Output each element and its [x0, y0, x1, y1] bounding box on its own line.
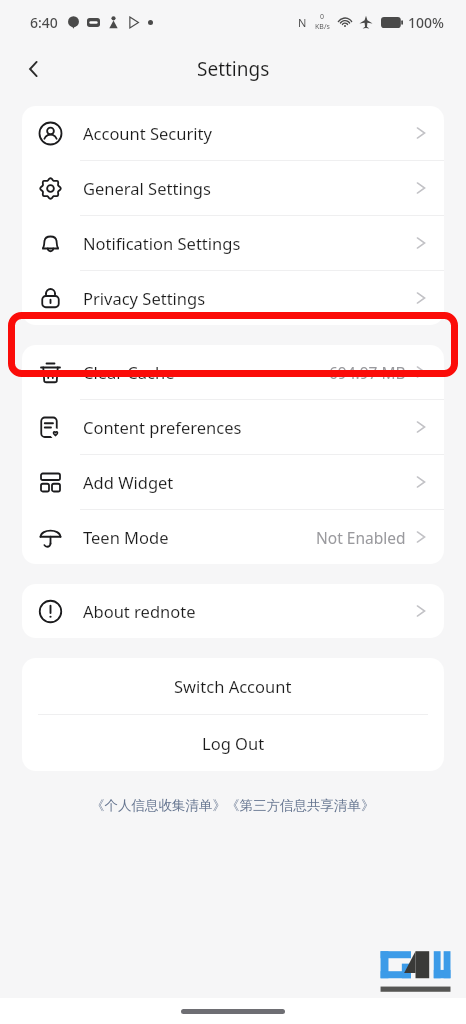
button[interactable]: Add Widget: [22, 455, 444, 509]
staticText: General Settings: [83, 177, 211, 199]
button[interactable]: Back: [14, 49, 54, 89]
staticText: Content preferences: [83, 416, 242, 438]
button[interactable]: 《个人信息收集清单》: [91, 797, 226, 814]
staticText: N: [298, 15, 307, 30]
staticText: Add Widget: [83, 471, 174, 493]
button[interactable]: Account Security: [22, 106, 444, 160]
staticText: 《第三方信息共享清单》: [226, 797, 375, 814]
button[interactable]: Switch Account: [22, 658, 444, 714]
staticText: KB/s: [315, 22, 330, 32]
staticText: 6:40: [30, 13, 58, 32]
staticText: Not Enabled: [316, 527, 406, 548]
staticText: 0: [320, 12, 325, 22]
button[interactable]: Notification Settings: [22, 216, 444, 270]
staticText: Clear Cache: [83, 361, 175, 383]
button[interactable]: About rednote: [22, 584, 444, 638]
button[interactable]: Teen Mode: [22, 510, 444, 564]
button[interactable]: General Settings: [22, 161, 444, 215]
staticText: Switch Account: [174, 675, 292, 697]
button[interactable]: Privacy Settings: [22, 271, 444, 325]
staticText: Settings: [197, 56, 270, 82]
staticText: Account Security: [83, 122, 212, 144]
button[interactable]: Content preferences: [22, 400, 444, 454]
staticText: Notification Settings: [83, 232, 241, 254]
staticText: 100%: [408, 13, 444, 32]
staticText: Log Out: [202, 732, 265, 754]
staticText: Teen Mode: [83, 526, 169, 548]
button[interactable]: Log Out: [22, 715, 444, 771]
staticText: 694.97 MB: [329, 362, 406, 383]
staticText: 《个人信息收集清单》: [91, 797, 226, 814]
button[interactable]: Clear Cache: [22, 345, 444, 399]
button[interactable]: 《第三方信息共享清单》: [226, 797, 375, 814]
staticText: Privacy Settings: [83, 287, 206, 309]
staticText: About rednote: [83, 600, 196, 622]
